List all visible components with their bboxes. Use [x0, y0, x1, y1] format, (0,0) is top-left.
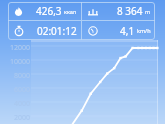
- other: Distance: [88, 7, 98, 17]
- staticText: 4,1: [120, 24, 135, 38]
- button[interactable]: Duration: [8, 21, 81, 40]
- staticText: 02:01:12: [37, 24, 77, 38]
- staticText: ккал: [64, 8, 77, 15]
- button[interactable]: Calories: [8, 2, 81, 20]
- staticText: 12000: [9, 43, 30, 53]
- button[interactable]: Distance: [82, 2, 155, 20]
- other: Speed: [88, 26, 98, 36]
- staticText: 8 364: [117, 4, 143, 18]
- staticText: 8000: [13, 71, 30, 81]
- other: Calories: [14, 7, 23, 16]
- staticText: 426,3: [36, 4, 62, 18]
- staticText: 10000: [9, 57, 30, 67]
- button[interactable]: Speed: [82, 21, 155, 40]
- staticText: km/h: [137, 27, 151, 34]
- other: Duration: [14, 26, 24, 36]
- staticText: 2000: [13, 113, 30, 123]
- staticText: m: [145, 8, 151, 15]
- staticText: 6000: [13, 85, 30, 95]
